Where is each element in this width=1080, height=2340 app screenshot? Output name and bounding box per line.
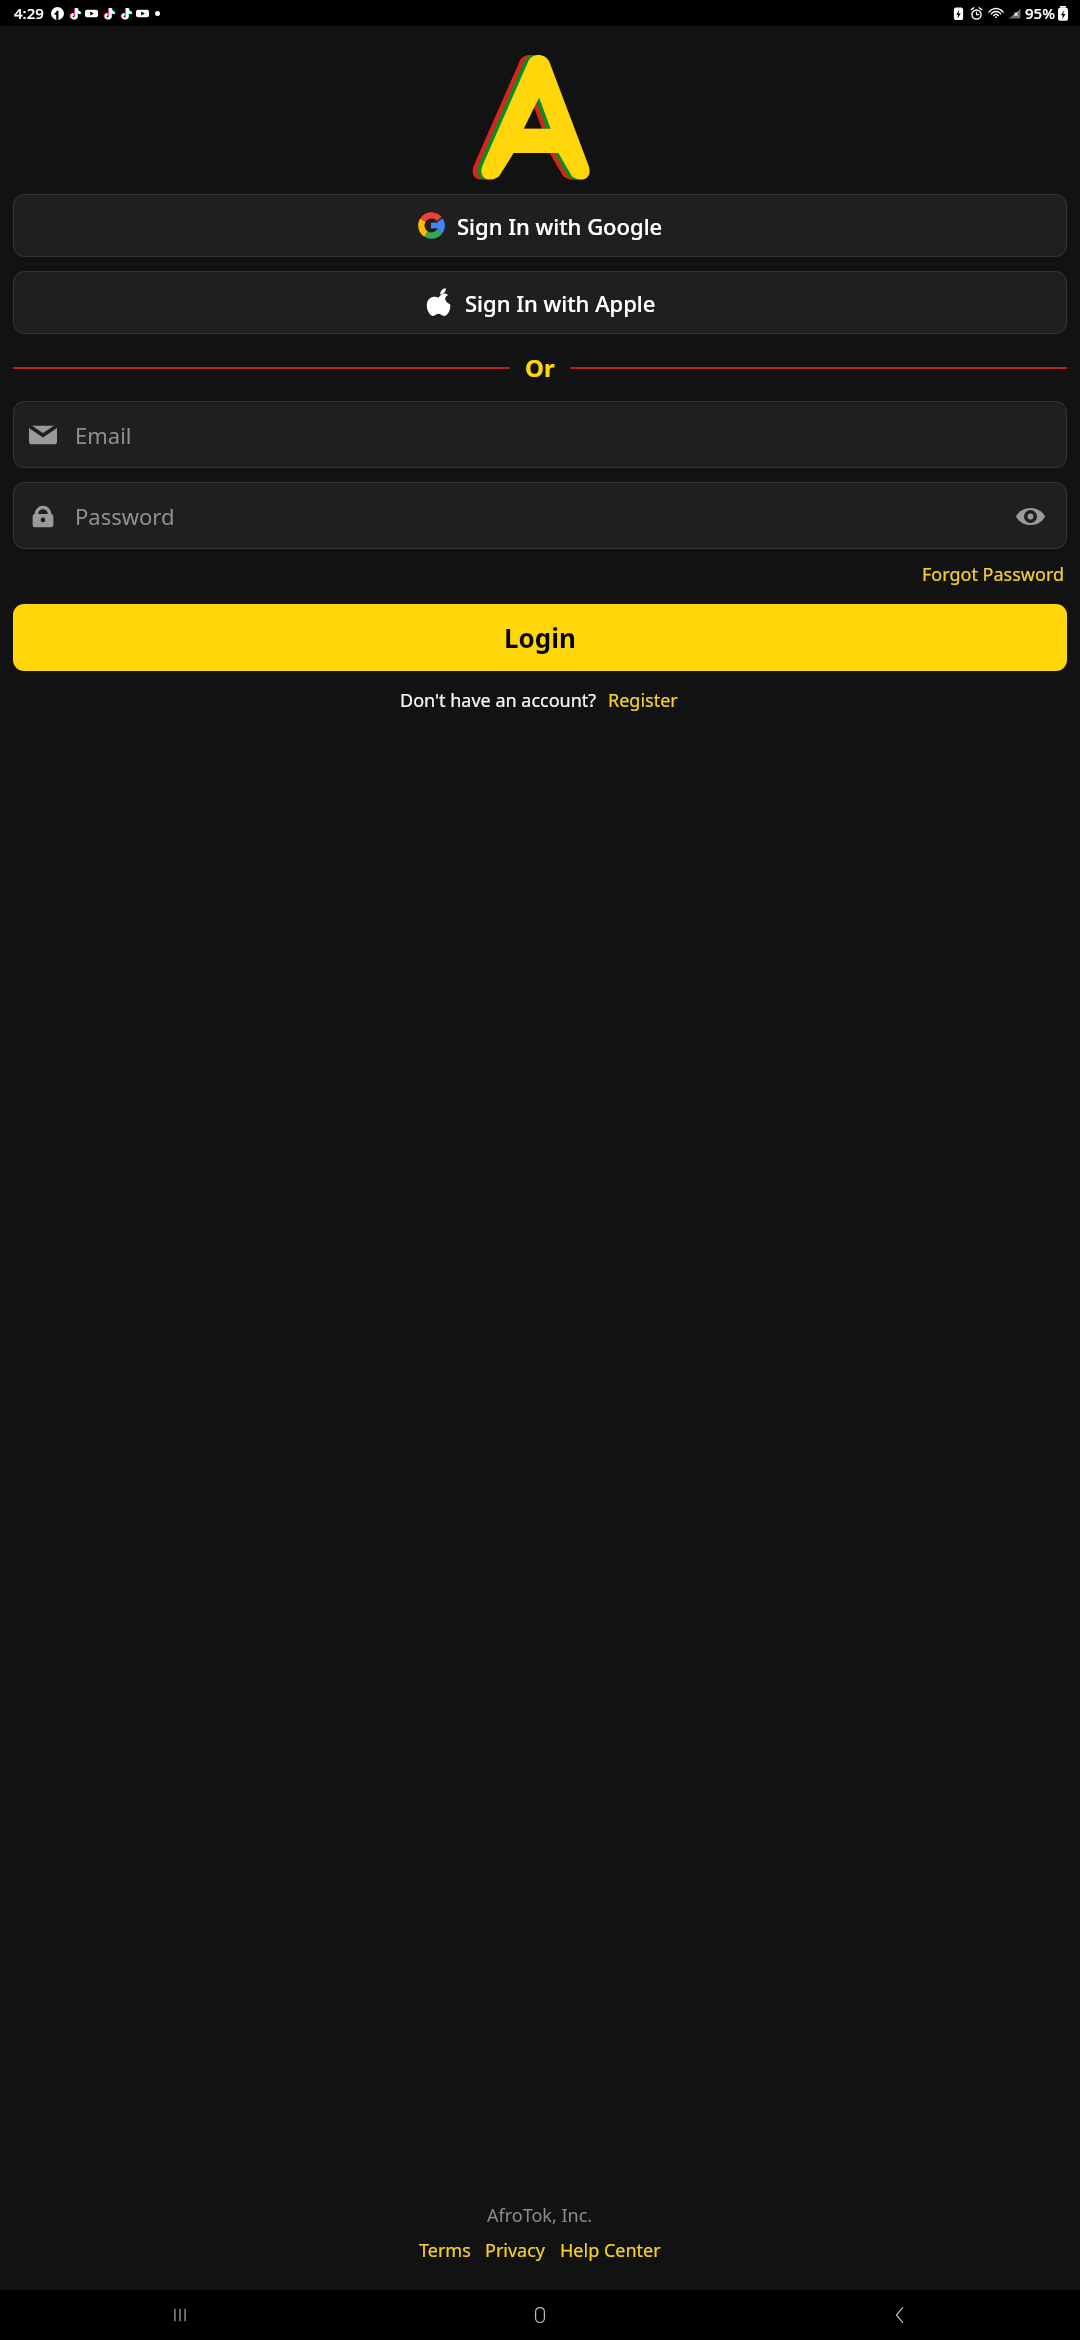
button[interactable]: Privacy xyxy=(483,2235,548,2266)
button[interactable]: Email xyxy=(13,401,1067,468)
staticText: Password xyxy=(75,501,175,531)
button[interactable]: Show password xyxy=(1009,495,1051,537)
staticText: Login xyxy=(504,620,576,655)
button[interactable]: Recent apps xyxy=(0,2290,360,2340)
button[interactable]: Terms xyxy=(417,2235,473,2266)
button[interactable]: Register xyxy=(606,685,680,716)
button[interactable]: Help Center xyxy=(558,2235,663,2266)
staticText: 95% xyxy=(1025,3,1055,23)
button[interactable]: Home xyxy=(360,2290,720,2340)
button[interactable]: Back xyxy=(720,2290,1080,2340)
button[interactable]: Login xyxy=(13,604,1067,671)
button[interactable]: Sign In with Apple xyxy=(13,271,1067,334)
staticText: Email xyxy=(75,420,132,450)
button[interactable]: Password xyxy=(13,482,1067,549)
staticText: Sign In with Google xyxy=(457,211,663,241)
staticText: AfroTok, Inc. xyxy=(487,2203,593,2228)
button[interactable]: Forgot Password xyxy=(920,557,1067,592)
staticText: 4:29 xyxy=(14,3,44,23)
button[interactable]: Sign In with Google xyxy=(13,194,1067,257)
staticText: Or xyxy=(525,351,555,384)
staticText: Sign In with Apple xyxy=(465,288,656,318)
staticText: Don't have an account? xyxy=(400,688,597,713)
